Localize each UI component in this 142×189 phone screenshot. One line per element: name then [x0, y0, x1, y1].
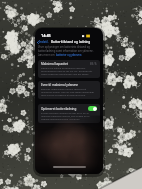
- staticText: Evne til maksimal ydeevne: [41, 83, 79, 87]
- staticText: Maksimal kapacitet: [41, 62, 69, 66]
- staticText: Optimeret batteriladning: [41, 107, 77, 111]
- staticText: Viser oplysninger om batteriets tilstand…: [38, 45, 90, 49]
- staticText: Batteriet understøtter normal ydeevne på…: [41, 88, 97, 97]
- staticText: Batteritilstand og ladning: [51, 40, 91, 44]
- staticText: 14:45: [41, 33, 51, 38]
- staticText: batteriladning samt information om ydeev…: [38, 49, 94, 53]
- staticText: batterier og ydeevne.: [56, 53, 83, 57]
- staticText: iPhone forsinker ladning ud over 80 % fo…: [41, 112, 97, 121]
- button[interactable]: Evne til maksimal ydeevne: [38, 81, 100, 99]
- button[interactable]: Optimeret batteriladning: [38, 104, 100, 123]
- staticText: 86 %: [90, 62, 97, 66]
- staticText: Dette er en måling af batteriets kapacit…: [41, 67, 97, 76]
- staticText: Læs mere om: [38, 53, 56, 57]
- other: Back: [37, 41, 39, 44]
- button[interactable]: Maksimal kapacitet: [38, 60, 100, 78]
- button[interactable]: Back: [37, 40, 101, 44]
- staticText: Indstil.: [39, 40, 49, 44]
- button[interactable]: Optimeret batteriladning: [88, 106, 97, 111]
